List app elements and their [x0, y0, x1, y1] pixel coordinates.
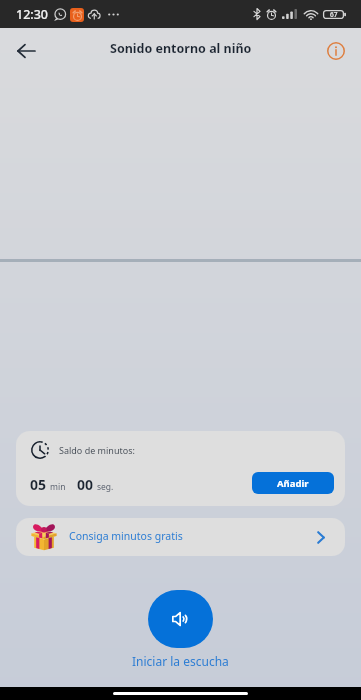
button[interactable]: Añadir — [252, 472, 334, 494]
staticText: 12:30 — [16, 6, 49, 23]
staticText: seg. — [97, 481, 114, 493]
button[interactable]: Iniciar la escucha — [148, 590, 213, 648]
staticText: Saldo de minutos: — [59, 444, 135, 456]
staticText: Añadir — [277, 477, 309, 490]
button[interactable]: Consiga minutos gratis — [16, 518, 345, 556]
staticText: Consiga minutos gratis — [69, 529, 183, 543]
staticText: min — [50, 481, 66, 493]
button[interactable]: Back — [8, 33, 44, 69]
staticText: Sonido entorno al niño — [110, 40, 252, 57]
button[interactable]: Information — [319, 34, 353, 68]
staticText: 67 — [330, 10, 338, 19]
staticText: 05 — [30, 475, 47, 494]
staticText: 00 — [77, 475, 94, 494]
staticText: Iniciar la escucha — [132, 653, 229, 669]
